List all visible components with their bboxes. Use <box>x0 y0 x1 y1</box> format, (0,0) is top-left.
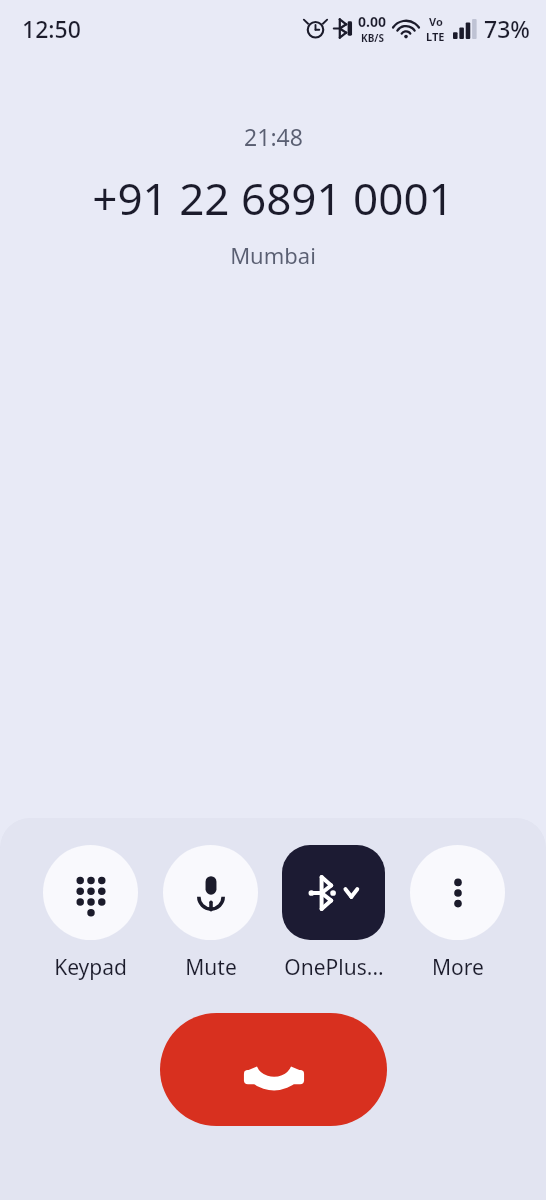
staticText: 21:48 <box>244 121 303 152</box>
staticText: More <box>432 953 484 982</box>
staticText: KB/S <box>361 31 384 45</box>
button[interactable]: Keypad <box>43 845 138 982</box>
button[interactable]: End call <box>160 1013 387 1126</box>
staticText: 12:50 <box>22 13 81 44</box>
button[interactable]: Mute <box>163 845 258 982</box>
staticText: +91 22 6891 0001 <box>92 168 454 228</box>
staticText: OnePlus... <box>284 953 384 982</box>
staticText: Vo <box>429 14 443 29</box>
staticText: Mute <box>185 953 237 982</box>
button[interactable]: Bluetooth audio device <box>282 845 385 982</box>
staticText: Mumbai <box>230 240 316 270</box>
staticText: 0.00 <box>358 12 386 31</box>
staticText: Keypad <box>54 953 127 982</box>
button[interactable]: More options <box>410 845 505 982</box>
staticText: LTE <box>426 29 445 44</box>
staticText: 73% <box>484 13 530 44</box>
